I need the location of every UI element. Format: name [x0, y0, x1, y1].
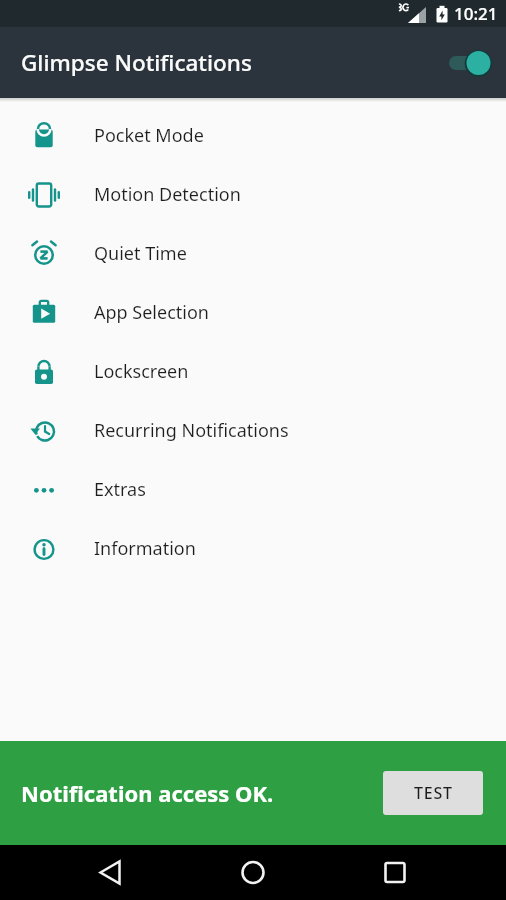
staticText: Quiet Time	[94, 241, 187, 266]
button[interactable]: Lockscreen	[0, 342, 506, 401]
button[interactable]	[0, 845, 168, 900]
button[interactable]	[446, 40, 506, 86]
button[interactable]: Extras	[0, 460, 506, 519]
button[interactable]: TEST	[383, 771, 483, 815]
staticText: App Selection	[94, 300, 209, 325]
staticText: Extras	[94, 477, 146, 502]
staticText: Glimpse Notifications	[21, 47, 252, 78]
button[interactable]: Quiet Time	[0, 224, 506, 283]
button[interactable]: Motion Detection	[0, 165, 506, 224]
button[interactable]: Pocket Mode	[0, 106, 506, 165]
staticText: Motion Detection	[94, 182, 241, 207]
button[interactable]: Information	[0, 519, 506, 578]
staticText: Lockscreen	[94, 359, 189, 384]
staticText: 10:21	[454, 2, 498, 25]
button[interactable]	[168, 845, 337, 900]
button[interactable]	[337, 845, 506, 900]
staticText: Pocket Mode	[94, 123, 204, 148]
staticText: Information	[94, 536, 196, 561]
staticText: TEST	[414, 782, 453, 804]
staticText: Recurring Notifications	[94, 418, 289, 443]
button[interactable]: Recurring Notifications	[0, 401, 506, 460]
staticText: Notification access OK.	[21, 778, 274, 808]
button[interactable]: App Selection	[0, 283, 506, 342]
